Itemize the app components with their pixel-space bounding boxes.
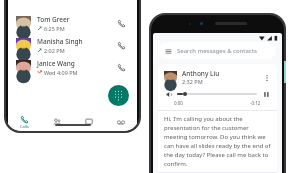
staticText: Wed 4:09 PM [44,69,78,76]
staticText: 6:25 PM [44,25,65,32]
button[interactable]: Call Tom Greer [115,16,129,30]
staticText: Search messages & contacts [177,47,257,55]
staticText: Hi, I'm calling you about the presentati… [164,115,271,167]
button[interactable]: Dialpad [108,85,129,106]
button[interactable]: Manisha Singh [8,34,137,56]
staticText: 2:02 PM [44,47,65,54]
button[interactable]: Messages [73,112,105,131]
staticText: 2:32 PM [182,78,203,85]
staticText: -0:12 [250,100,261,106]
staticText: Calls [20,124,29,129]
staticText: 0:00 [174,100,183,106]
button[interactable]: Voicemail [105,112,137,131]
staticText: Janice Wang [37,59,75,68]
button[interactable]: Tom Greer [8,12,137,34]
button[interactable]: Search messages & contacts [159,42,276,59]
staticText: Tom Greer [37,15,70,24]
button[interactable]: Contacts [41,112,73,131]
button[interactable]: Speaker [164,89,174,99]
staticText: Manisha Singh [37,37,83,46]
button[interactable]: Call Janice Wang [115,60,129,74]
button[interactable]: Calls [8,112,41,131]
button[interactable]: Call Manisha Singh [115,38,129,52]
button[interactable]: More options [261,72,272,83]
button[interactable]: Pause [261,89,271,99]
staticText: Anthony Liu [182,69,220,78]
button[interactable]: Janice Wang [8,56,137,78]
